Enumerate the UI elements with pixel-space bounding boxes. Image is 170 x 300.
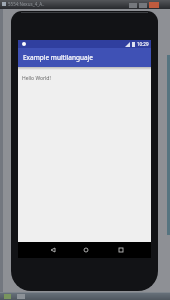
staticText: Example multilanguaje [23, 53, 93, 62]
button[interactable] [116, 245, 126, 255]
staticText: 5554:Nexus_4_A.. [8, 1, 45, 7]
button[interactable] [81, 245, 91, 255]
button[interactable] [48, 245, 58, 255]
staticText: 10:29 [137, 41, 149, 47]
button[interactable]: Example multilanguaje [18, 48, 151, 67]
staticText: Hello World! [22, 75, 51, 82]
